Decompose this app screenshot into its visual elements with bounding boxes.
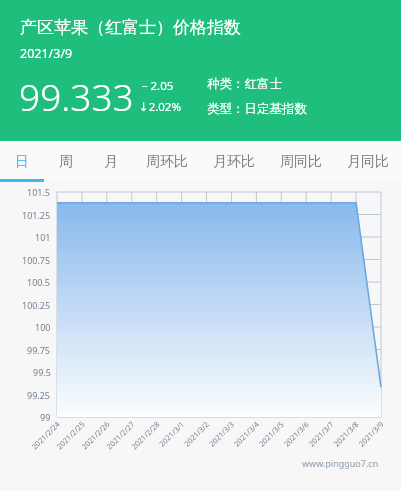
staticText: 周: [59, 153, 73, 171]
staticText: 周环比: [146, 153, 188, 171]
staticText: 日: [15, 153, 29, 171]
staticText: 月环比: [213, 153, 255, 171]
button[interactable]: 周环比: [133, 141, 200, 182]
staticText: 2021/3/9: [20, 45, 73, 62]
staticText: 月同比: [347, 153, 389, 171]
button[interactable]: 月环比: [200, 141, 267, 182]
button[interactable]: 月同比: [334, 141, 401, 182]
staticText: 99.333: [19, 71, 134, 121]
staticText: 类型：日定基指数: [207, 101, 307, 117]
staticText: 周同比: [280, 153, 322, 171]
button[interactable]: 周同比: [267, 141, 334, 182]
staticText: －2.05: [139, 78, 174, 94]
staticText: 月: [104, 153, 118, 171]
staticText: 种类：红富士: [207, 76, 282, 92]
button[interactable]: 周: [44, 141, 88, 182]
staticText: 产区苹果（红富士）价格指数: [20, 17, 241, 38]
staticText: ↓2.02%: [139, 99, 182, 115]
button[interactable]: 日: [0, 141, 44, 182]
button[interactable]: 月: [88, 141, 133, 182]
